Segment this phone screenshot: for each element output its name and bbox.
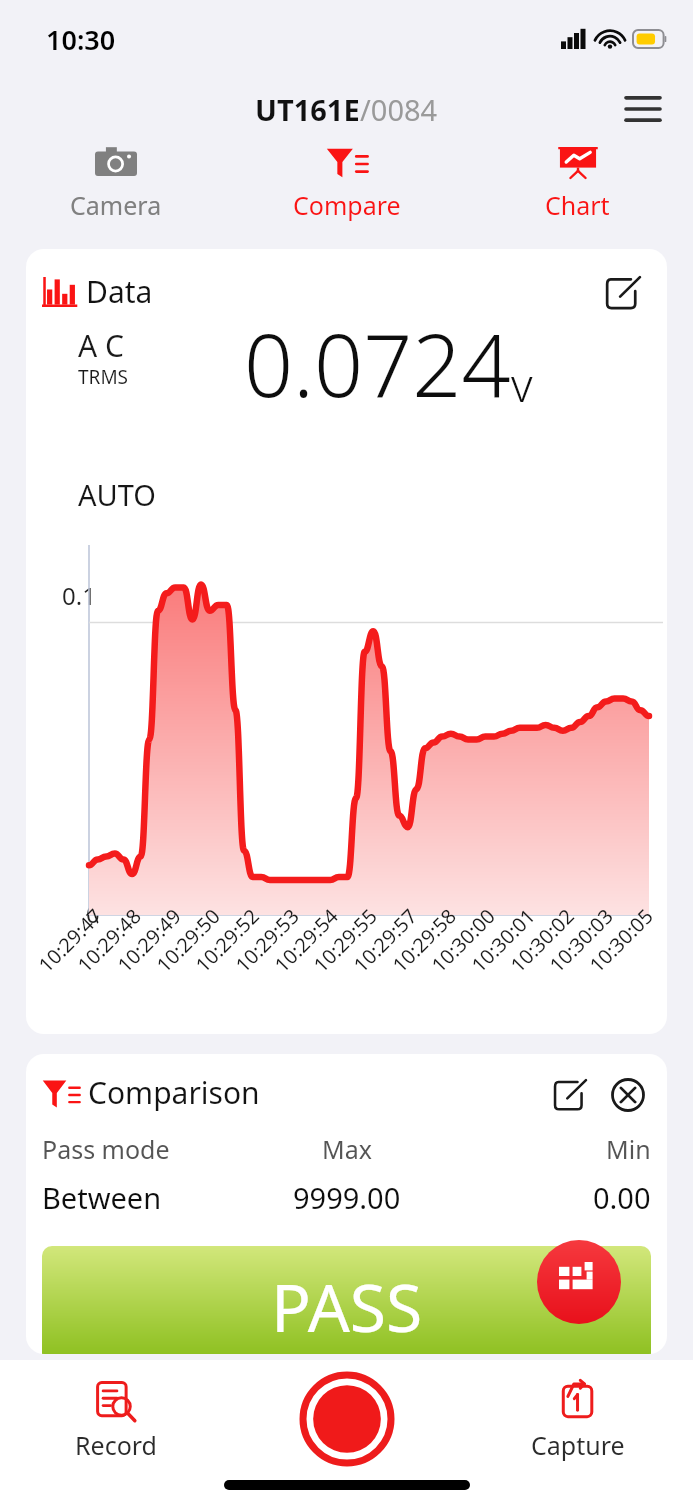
staticText: Camera xyxy=(70,188,162,222)
staticText: 10:29:48 xyxy=(71,903,147,978)
staticText: 10:29:55 xyxy=(307,903,383,978)
staticText: 10:30:05 xyxy=(583,903,659,978)
staticText: PASS xyxy=(271,1261,423,1351)
button[interactable]: Menu xyxy=(615,81,671,137)
button[interactable]: Edit data xyxy=(597,267,649,319)
staticText: 0.00 xyxy=(593,1178,651,1217)
staticText: /0084 xyxy=(360,90,438,129)
staticText: AUTO xyxy=(78,475,156,514)
button[interactable]: Capture xyxy=(462,1360,693,1500)
button[interactable]: Camera xyxy=(0,140,231,236)
staticText: Between xyxy=(42,1178,162,1217)
staticText: 0.1 xyxy=(62,579,96,612)
staticText: v xyxy=(511,353,533,416)
staticText: Comparison xyxy=(88,1072,260,1113)
staticText: 0 xyxy=(86,897,100,930)
staticText: 10:29:57 xyxy=(347,903,423,978)
staticText: TRMS xyxy=(78,364,129,390)
staticText: 9999.00 xyxy=(293,1178,401,1217)
staticText: A C xyxy=(78,325,124,366)
staticText: Chart xyxy=(545,188,610,222)
staticText: Capture xyxy=(531,1428,625,1462)
staticText: 10:29:53 xyxy=(229,903,305,978)
button[interactable]: PASS xyxy=(42,1246,651,1354)
staticText: Compare xyxy=(293,188,401,222)
button[interactable]: Compare xyxy=(231,140,462,236)
staticText: 10:29:47 xyxy=(32,903,108,978)
staticText: Data xyxy=(86,271,153,312)
staticText: 10:29:50 xyxy=(150,903,226,978)
staticText: 10:29:52 xyxy=(189,903,265,978)
staticText: UT161E xyxy=(255,90,360,129)
staticText: Record xyxy=(75,1428,157,1462)
button[interactable]: Layout options xyxy=(537,1240,621,1324)
button[interactable]: Chart xyxy=(462,140,693,236)
button[interactable]: Edit comparison xyxy=(545,1070,595,1120)
staticText: 10:29:58 xyxy=(386,903,462,978)
staticText: 10:30:01 xyxy=(465,903,541,978)
staticText: Min xyxy=(606,1132,651,1166)
staticText: 10:29:54 xyxy=(268,903,344,978)
button[interactable]: Close comparison xyxy=(603,1070,653,1120)
button[interactable]: Record xyxy=(0,1360,231,1500)
staticText: 10:30:00 xyxy=(425,903,501,978)
staticText: 0.0724 xyxy=(244,305,511,422)
staticText: Pass mode xyxy=(42,1132,170,1166)
button[interactable]: Record xyxy=(300,1372,394,1466)
staticText: 10:30:03 xyxy=(543,903,619,978)
staticText: 10:30 xyxy=(46,21,116,58)
staticText: 10:29:49 xyxy=(111,903,187,978)
staticText: 10:30:02 xyxy=(504,903,580,978)
staticText: Max xyxy=(322,1132,372,1166)
